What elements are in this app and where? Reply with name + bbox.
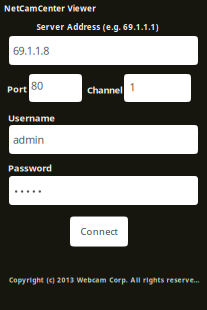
staticText: 80 xyxy=(31,78,43,93)
staticText: NetCamCenter Viewer xyxy=(4,3,96,14)
staticText: Channel xyxy=(87,84,123,96)
staticText: 1 xyxy=(129,80,135,94)
staticText: Port xyxy=(7,83,27,95)
staticText: 69.1.1.8 xyxy=(13,43,49,58)
staticText: Copyright (c) 2013 Webcam Corp. All righ… xyxy=(9,276,200,284)
staticText: Connect xyxy=(80,225,118,238)
staticText: Username xyxy=(8,112,55,124)
staticText: Password xyxy=(8,162,52,174)
staticText: Server Address (e.g. 69.1.1.1) xyxy=(36,22,159,32)
button[interactable]: Connect xyxy=(70,216,128,246)
staticText: admin xyxy=(13,132,44,147)
